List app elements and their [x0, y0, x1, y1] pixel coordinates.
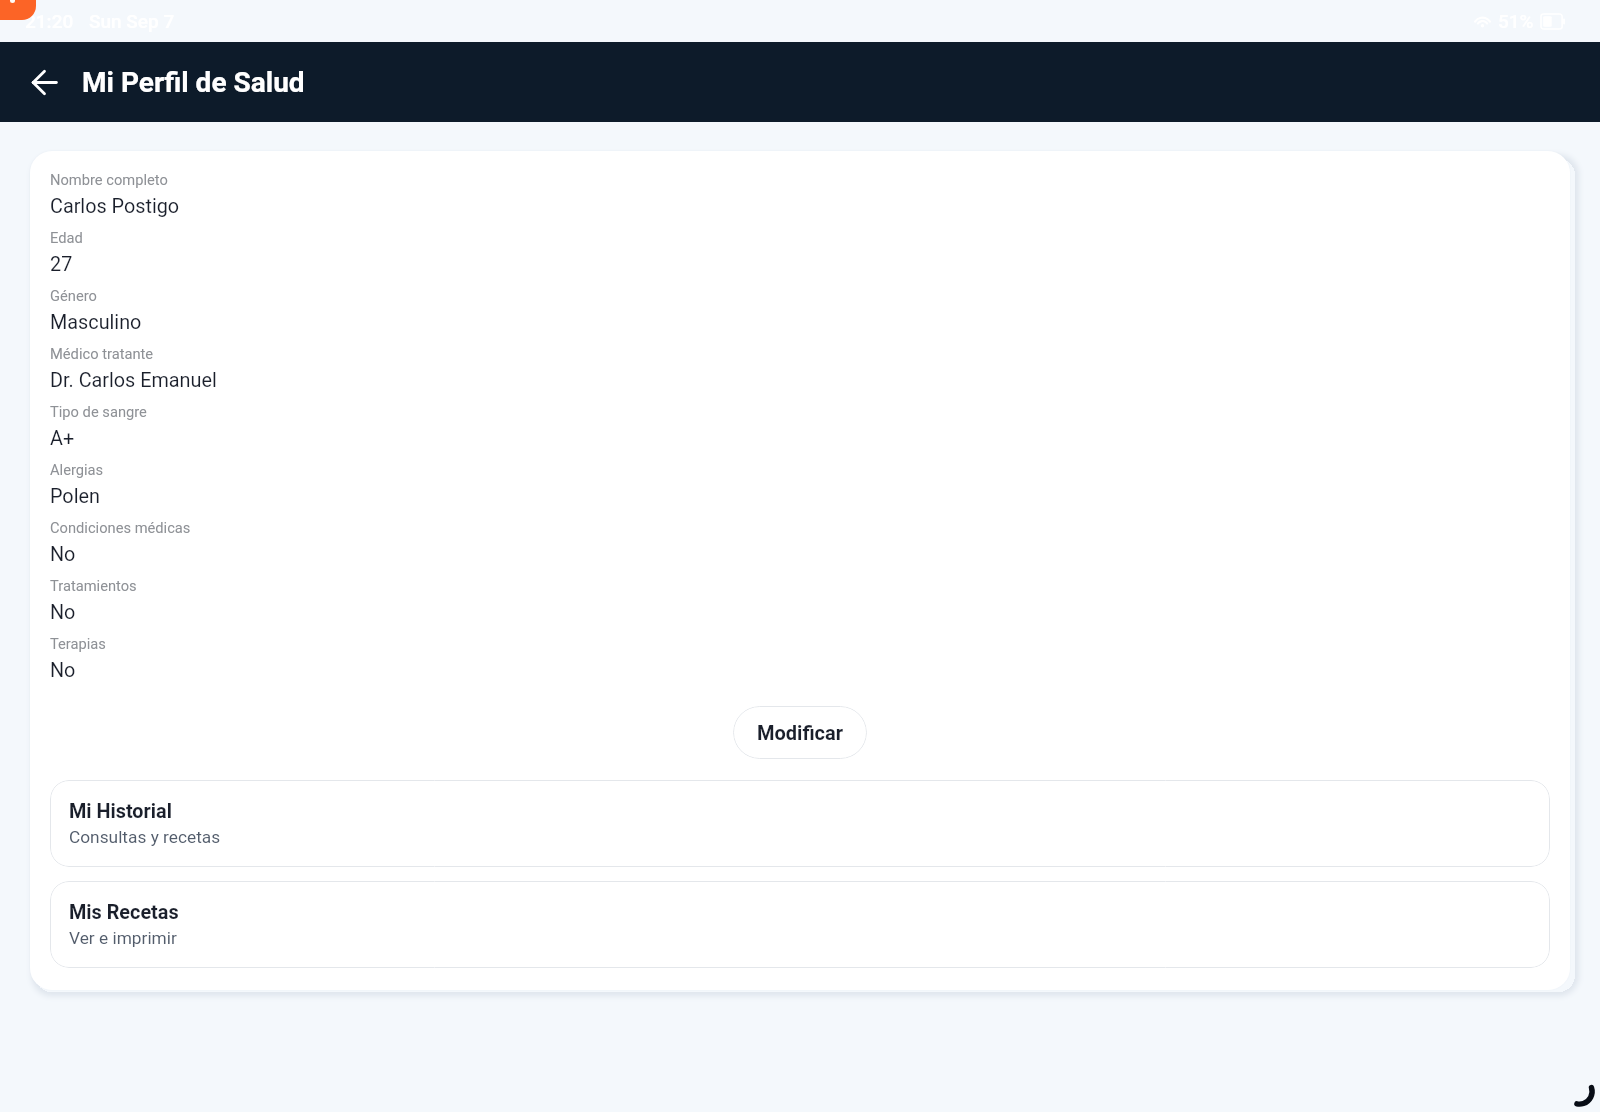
staticText: 21:20: [25, 10, 74, 32]
staticText: Mi Historial: [69, 800, 172, 823]
staticText: Modificar: [757, 721, 844, 744]
staticText: Dr. Carlos Emanuel: [50, 369, 217, 392]
staticText: Tratamientos: [50, 577, 137, 594]
staticText: Ver e imprimir: [69, 928, 177, 948]
staticText: 51%: [1498, 10, 1534, 32]
staticText: Médico tratante: [50, 345, 154, 362]
staticText: Alergias: [50, 461, 104, 478]
button[interactable]: Mi Historial: [50, 780, 1550, 867]
staticText: A+: [50, 427, 75, 450]
staticText: Consultas y recetas: [69, 827, 221, 847]
staticText: Tipo de sangre: [50, 403, 147, 420]
staticText: Mi Perfil de Salud: [82, 66, 305, 99]
button[interactable]: Modificar: [733, 706, 867, 759]
staticText: No: [50, 601, 76, 624]
staticText: No: [50, 659, 76, 682]
button[interactable]: Back: [20, 58, 68, 106]
staticText: Masculino: [50, 311, 142, 334]
staticText: Nombre completo: [50, 171, 168, 188]
staticText: Mis Recetas: [69, 901, 179, 924]
button[interactable]: Mis Recetas: [50, 881, 1550, 968]
staticText: Género: [50, 287, 97, 304]
staticText: 27: [50, 253, 73, 276]
staticText: Polen: [50, 485, 100, 508]
staticText: Terapias: [50, 635, 106, 652]
staticText: Edad: [50, 229, 83, 246]
staticText: Sun Sep 7: [89, 10, 175, 32]
staticText: Carlos Postigo: [50, 195, 180, 218]
staticText: Condiciones médicas: [50, 519, 191, 536]
staticText: No: [50, 543, 76, 566]
